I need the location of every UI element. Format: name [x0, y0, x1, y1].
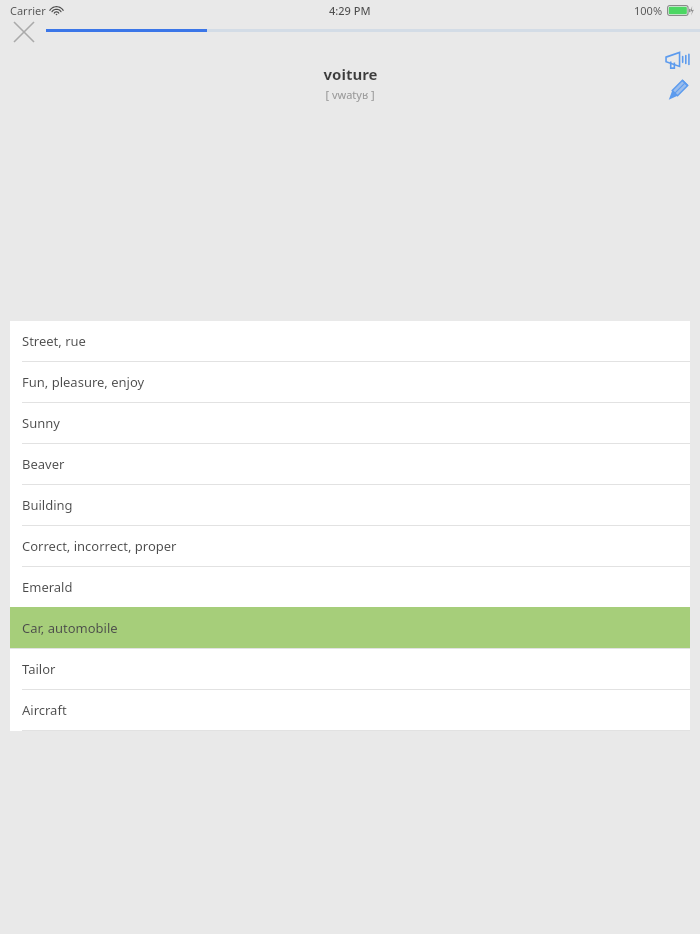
staticText: voiture	[323, 64, 378, 84]
button[interactable]: Tailor	[10, 649, 690, 689]
staticText: Tailor	[22, 660, 56, 678]
button[interactable]: Sunny	[10, 403, 690, 443]
staticText: Car, automobile	[22, 619, 118, 637]
staticText: Beaver	[22, 455, 65, 473]
staticText: Aircraft	[22, 701, 67, 719]
staticText: Building	[22, 496, 73, 514]
staticText: Sunny	[22, 414, 60, 432]
staticText: Street, rue	[22, 332, 86, 350]
staticText: Carrier	[10, 3, 46, 18]
staticText: [ vwatyʁ ]	[325, 87, 375, 102]
button[interactable]: Fun, pleasure, enjoy	[10, 362, 690, 402]
button[interactable]: Beaver	[10, 444, 690, 484]
staticText: Fun, pleasure, enjoy	[22, 373, 145, 391]
button[interactable]: Street, rue	[10, 321, 690, 361]
staticText: 100%	[634, 3, 663, 18]
button[interactable]: Edit	[660, 76, 696, 104]
staticText: Emerald	[22, 578, 73, 596]
button[interactable]: Aircraft	[10, 690, 690, 730]
staticText: 4:29 PM	[329, 3, 371, 18]
button[interactable]: Building	[10, 485, 690, 525]
staticText: Correct, incorrect, proper	[22, 537, 177, 555]
button[interactable]: Close	[6, 14, 42, 50]
button[interactable]: Car, automobile	[10, 608, 690, 648]
button[interactable]: Emerald	[10, 567, 690, 607]
button[interactable]: Correct, incorrect, proper	[10, 526, 690, 566]
button[interactable]: Pronounce	[660, 46, 696, 74]
